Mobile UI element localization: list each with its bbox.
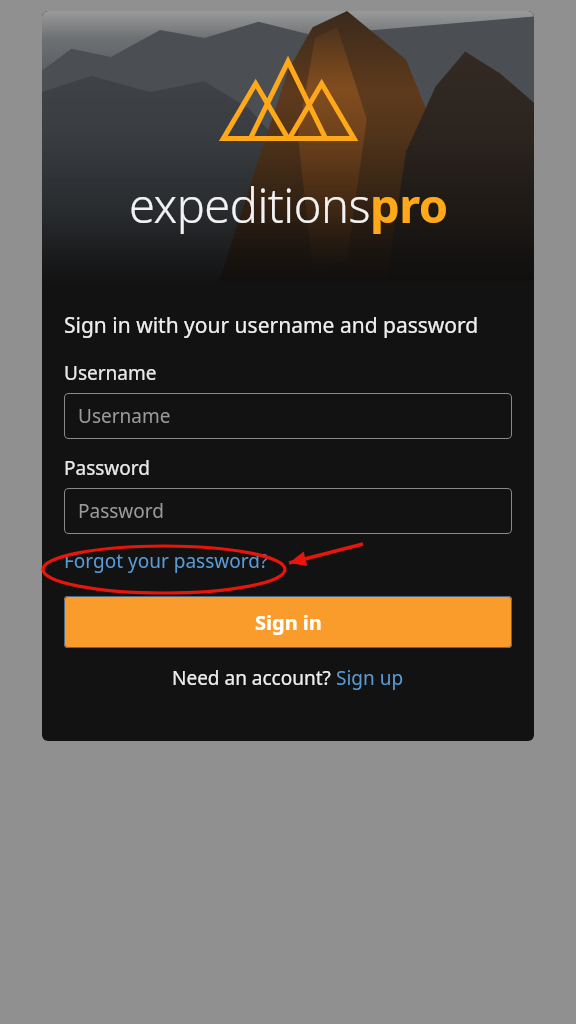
staticText: Password — [64, 455, 150, 481]
staticText: Password — [78, 498, 164, 524]
button[interactable]: Username — [64, 393, 512, 439]
staticText: Username — [78, 403, 171, 429]
staticText: Sign up — [336, 665, 404, 691]
button[interactable]: Sign in — [64, 596, 512, 648]
staticText: expeditions — [129, 173, 370, 237]
staticText: Username — [64, 360, 157, 386]
button[interactable]: Forgot your password? — [64, 542, 269, 580]
staticText: Forgot your password? — [64, 548, 269, 574]
button[interactable]: Sign up — [336, 665, 404, 691]
button[interactable]: Password — [64, 488, 512, 534]
staticText: Need an account? — [172, 665, 336, 691]
staticText: pro — [370, 173, 448, 237]
staticText: Sign in — [255, 609, 322, 636]
staticText: Sign in with your username and password — [64, 311, 479, 340]
